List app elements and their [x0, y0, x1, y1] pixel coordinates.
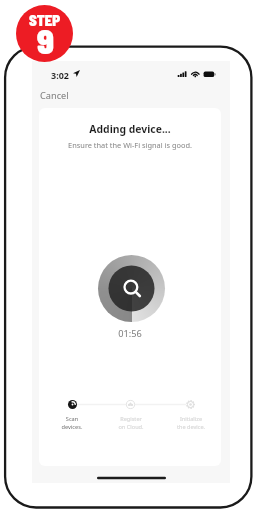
button[interactable]	[115, 396, 146, 436]
staticText: the device.	[169, 423, 213, 431]
staticText: Register	[109, 415, 153, 423]
staticText: 01:56	[39, 327, 221, 340]
staticText: Ensure that the Wi-Fi signal is good.	[39, 140, 221, 150]
button[interactable]: Step 9	[16, 5, 73, 62]
button[interactable]	[57, 396, 88, 436]
staticText: Scan	[50, 415, 94, 423]
button[interactable]	[175, 396, 206, 436]
staticText: devices.	[50, 423, 94, 431]
staticText: STEP	[16, 11, 73, 29]
staticText: Cancel	[40, 89, 69, 102]
staticText: 3:02	[51, 69, 69, 81]
staticText: Adding device...	[39, 122, 221, 136]
staticText: Initialize	[169, 415, 213, 423]
staticText: on Cloud.	[109, 423, 153, 431]
staticText: 9	[17, 20, 73, 61]
button[interactable]: Cancel	[35, 85, 74, 106]
